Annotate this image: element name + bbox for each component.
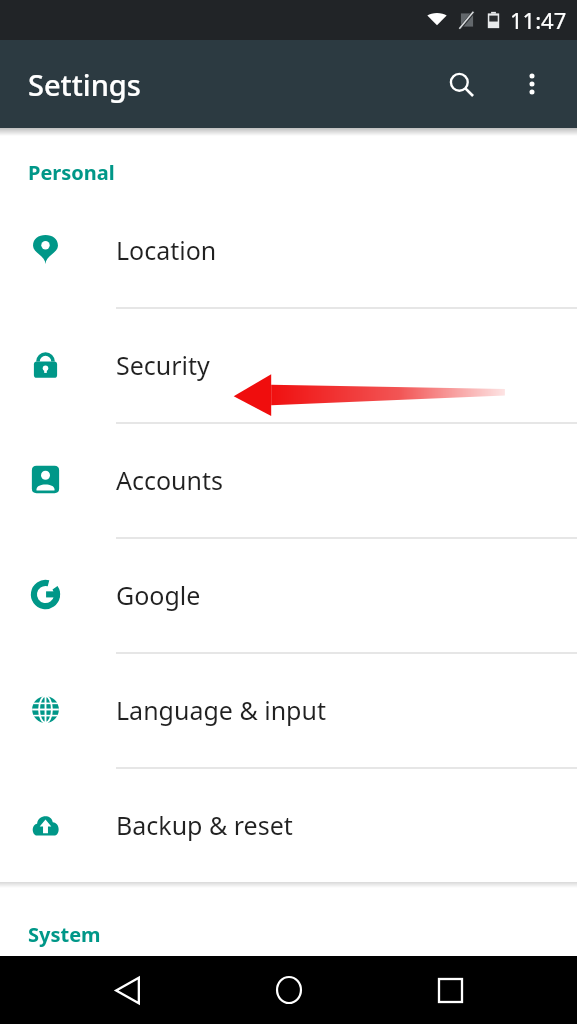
button[interactable]: Back — [92, 956, 162, 1024]
staticText: Security — [116, 348, 210, 382]
staticText: Personal — [28, 159, 115, 186]
button[interactable]: Recent apps — [415, 956, 485, 1024]
button[interactable]: Backup & reset — [0, 767, 577, 882]
button[interactable]: Accounts — [0, 422, 577, 537]
staticText: Backup & reset — [116, 808, 293, 842]
button[interactable]: Language & input — [0, 652, 577, 767]
button[interactable]: Search — [437, 60, 485, 108]
staticText: 11:47 — [510, 5, 567, 35]
staticText: Language & input — [116, 693, 326, 727]
button[interactable]: Home — [254, 956, 324, 1024]
staticText: Settings — [28, 65, 141, 104]
staticText: System — [28, 921, 101, 948]
button[interactable]: Google — [0, 537, 577, 652]
button[interactable]: More options — [509, 61, 555, 107]
button[interactable]: Security — [0, 307, 577, 422]
staticText: Google — [116, 578, 201, 612]
staticText: Accounts — [116, 463, 224, 497]
button[interactable]: Location — [0, 192, 577, 307]
staticText: Location — [116, 233, 217, 267]
